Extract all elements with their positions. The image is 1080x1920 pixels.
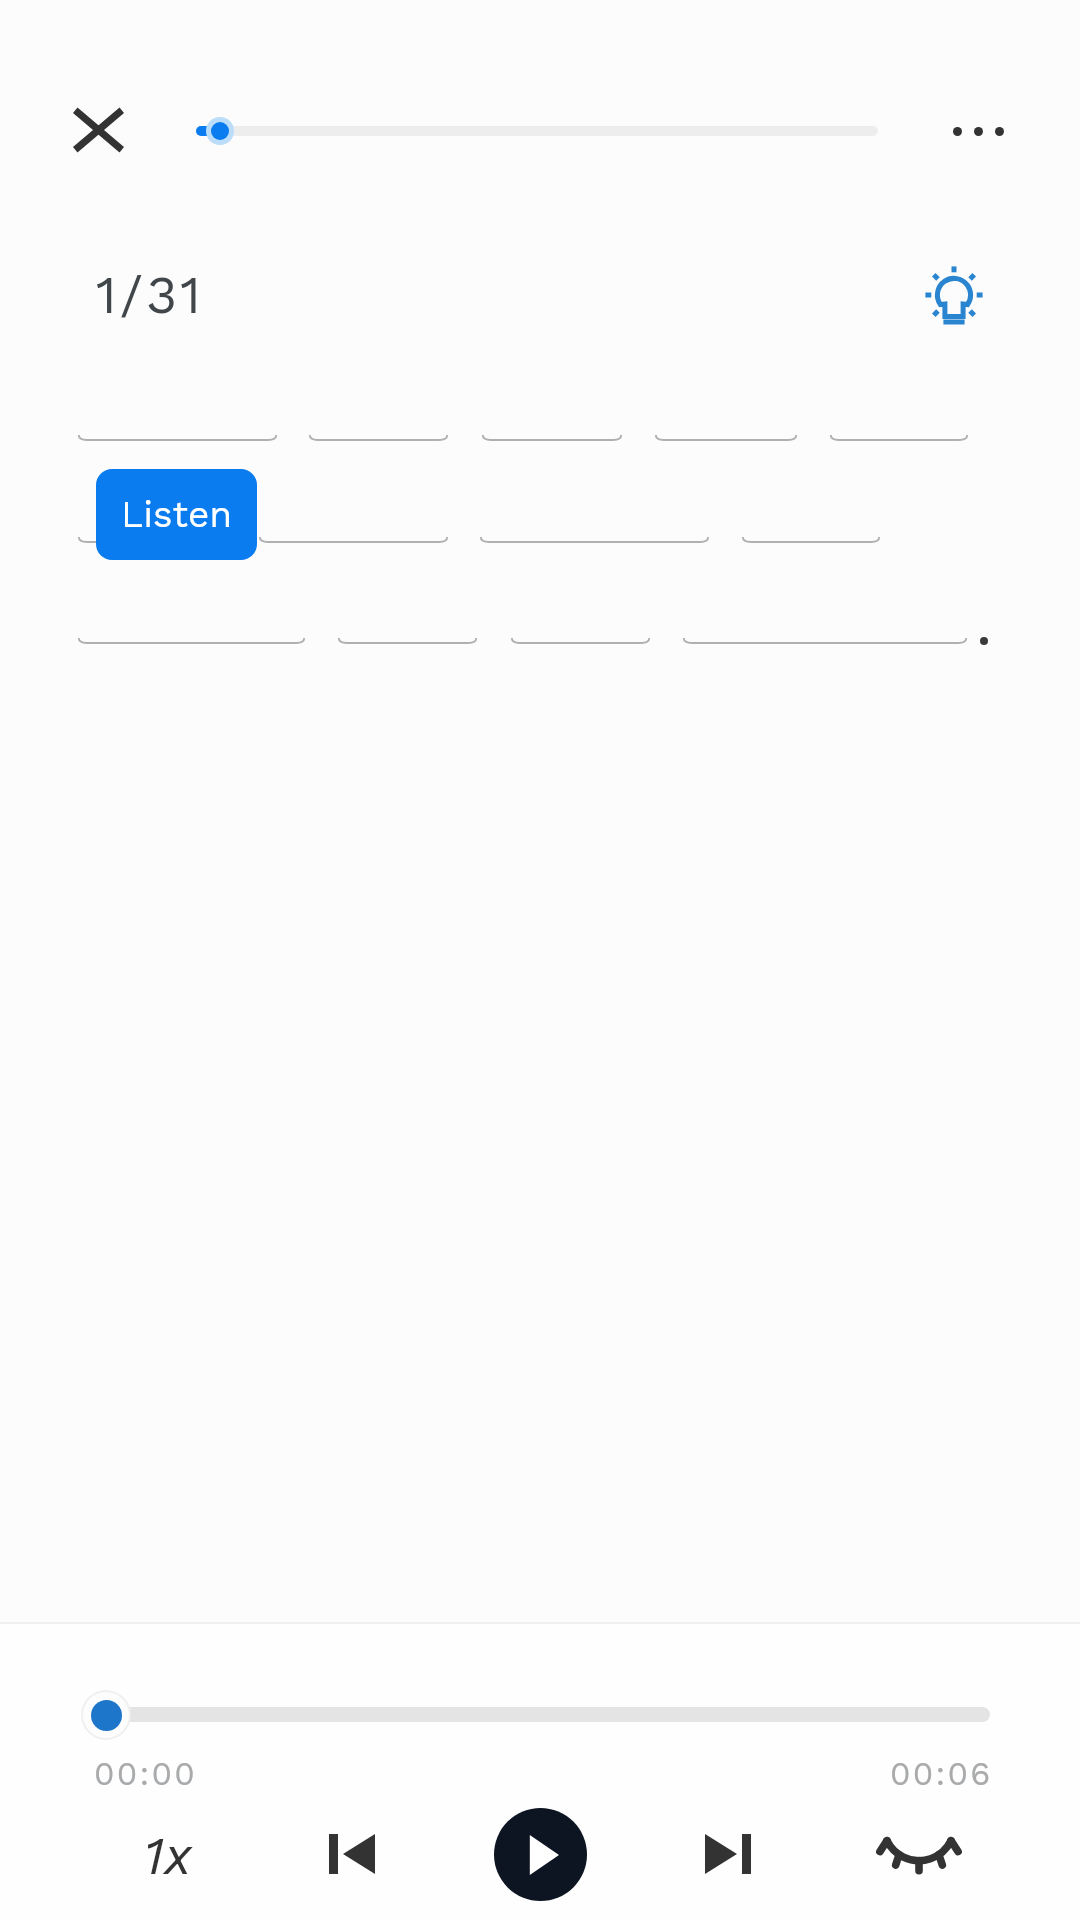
button[interactable]: Hint bbox=[904, 245, 1004, 345]
staticText: 1/31 bbox=[96, 264, 205, 326]
button[interactable]: Playback speed bbox=[118, 1806, 218, 1906]
button[interactable]: Next bbox=[678, 1804, 778, 1904]
button[interactable]: Listen bbox=[96, 469, 257, 560]
button[interactable]: Hide text bbox=[869, 1804, 969, 1904]
staticText: 00:00 bbox=[94, 1754, 197, 1793]
staticText: 00:06 bbox=[890, 1754, 993, 1793]
button[interactable]: More options bbox=[928, 81, 1028, 181]
button[interactable]: Play bbox=[494, 1808, 587, 1901]
button[interactable]: Previous bbox=[302, 1804, 402, 1904]
staticText: 1x bbox=[144, 1825, 192, 1887]
button[interactable]: Close bbox=[48, 80, 148, 180]
staticText: Listen bbox=[121, 493, 233, 536]
